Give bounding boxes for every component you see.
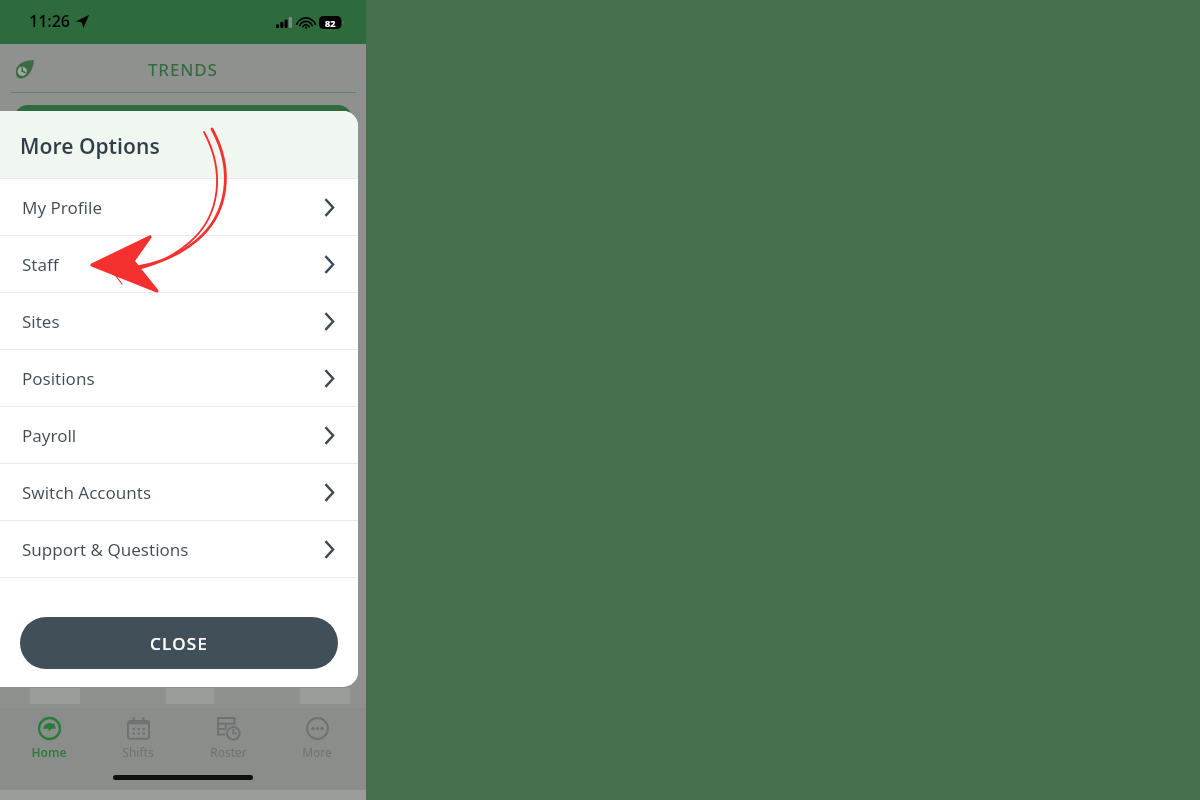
staticText: Home: [31, 744, 67, 760]
button[interactable]: Support & Questions: [0, 521, 358, 577]
other: App logo: [13, 59, 35, 81]
button[interactable]: My Profile: [0, 179, 358, 235]
staticText: 11:26: [29, 10, 71, 32]
staticText: My Profile: [22, 196, 325, 219]
button[interactable]: Shifts: [98, 717, 178, 770]
staticText: CLOSE: [150, 632, 209, 655]
staticText: Shifts: [122, 744, 154, 760]
staticText: Support & Questions: [22, 538, 325, 561]
button[interactable]: Sites: [0, 293, 358, 349]
staticText: More Options: [20, 132, 160, 161]
button[interactable]: More: [277, 717, 357, 770]
staticText: Payroll: [22, 424, 325, 447]
staticText: TRENDS: [148, 58, 218, 81]
button[interactable]: Home: [9, 717, 89, 770]
staticText: More: [302, 744, 332, 760]
button[interactable]: Payroll: [0, 407, 358, 463]
staticText: Switch Accounts: [22, 481, 325, 504]
staticText: 82: [325, 17, 336, 29]
button[interactable]: Switch Accounts: [0, 464, 358, 520]
staticText: Staff: [22, 253, 325, 276]
button[interactable]: Positions: [0, 350, 358, 406]
button[interactable]: Staff: [0, 236, 358, 292]
button[interactable]: Roster: [188, 717, 268, 770]
staticText: Sites: [22, 310, 325, 333]
staticText: Roster: [210, 744, 247, 760]
staticText: Positions: [22, 367, 325, 390]
button[interactable]: CLOSE: [20, 617, 338, 669]
